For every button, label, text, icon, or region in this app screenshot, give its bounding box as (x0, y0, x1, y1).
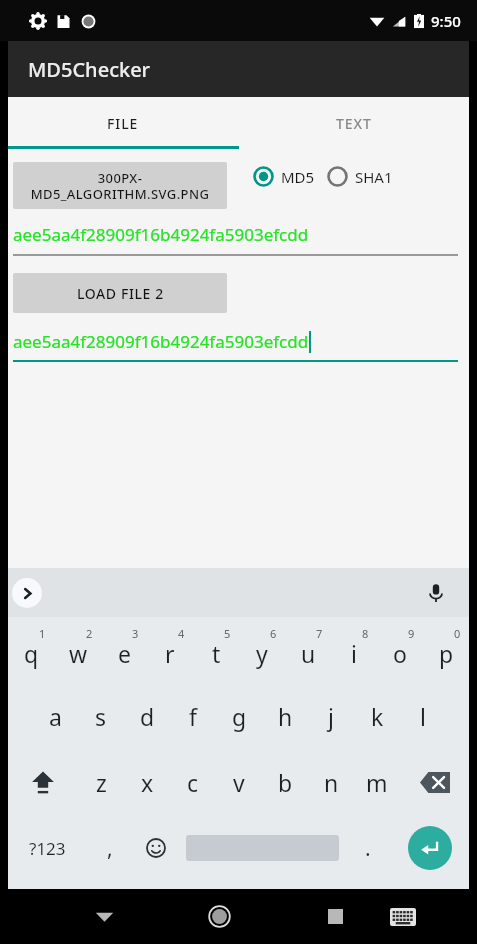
button[interactable]: x (124, 749, 170, 815)
button[interactable]: Voice input (421, 578, 451, 608)
button[interactable]: j (308, 683, 354, 749)
button[interactable]: g (216, 683, 262, 749)
button[interactable]: Home (189, 889, 250, 944)
button[interactable]: p (423, 617, 469, 683)
button[interactable]: Enter (391, 815, 469, 881)
button[interactable]: q (8, 617, 55, 683)
staticText: f (189, 701, 197, 732)
staticText: h (278, 701, 293, 732)
staticText: y (256, 638, 268, 669)
button[interactable]: MD5 (253, 166, 315, 187)
staticText: 6 (270, 626, 277, 641)
staticText: MD5 (281, 167, 315, 187)
button[interactable]: FILE (8, 97, 238, 149)
button[interactable]: Switch keyboard (372, 889, 433, 944)
button[interactable]: SHA1 (327, 166, 393, 187)
staticText: p (439, 638, 454, 669)
button[interactable]: Shift (8, 749, 78, 815)
staticText: , (107, 834, 113, 863)
staticText: r (165, 638, 175, 669)
staticText: 5 (224, 626, 231, 641)
staticText: 4 (178, 626, 185, 641)
button[interactable]: k (354, 683, 400, 749)
staticText: w (69, 638, 88, 669)
button[interactable]: e (101, 617, 147, 683)
button[interactable]: , (87, 815, 133, 881)
button[interactable]: r (147, 617, 193, 683)
button[interactable]: LOAD FILE 2 (13, 273, 227, 313)
staticText: 3 (132, 626, 139, 641)
button[interactable]: y (239, 617, 285, 683)
staticText: b (278, 767, 293, 798)
staticText: SHA1 (355, 167, 393, 187)
staticText: MD5Checker (28, 56, 151, 83)
staticText: g (232, 701, 247, 732)
staticText: k (371, 701, 384, 732)
button[interactable]: Backspace (400, 749, 469, 815)
button[interactable]: . (345, 815, 391, 881)
button[interactable]: Space (179, 815, 345, 881)
staticText: v (233, 767, 245, 798)
staticText: c (187, 767, 199, 798)
button[interactable]: h (262, 683, 308, 749)
staticText: x (141, 767, 154, 798)
button[interactable]: TEXT (238, 97, 469, 149)
staticText: 0 (454, 626, 461, 641)
staticText: t (212, 638, 221, 669)
button[interactable]: o (377, 617, 423, 683)
button[interactable]: Back (74, 889, 134, 944)
staticText: 7 (316, 626, 323, 641)
button[interactable]: Expand toolbar (12, 578, 42, 608)
staticText: aee5aa4f28909f16b4924fa5903efcdd (13, 330, 309, 353)
button[interactable]: s (78, 683, 124, 749)
staticText: z (96, 767, 107, 798)
button[interactable]: Recents (305, 889, 366, 944)
staticText: FILE (107, 114, 139, 133)
staticText: 1 (39, 626, 46, 641)
button[interactable]: 300PX-MD5_ALGORITHM.SVG.PNG (13, 162, 227, 209)
button[interactable]: n (308, 749, 354, 815)
staticText: a (49, 701, 62, 732)
button[interactable]: d (124, 683, 170, 749)
button[interactable]: l (400, 683, 446, 749)
staticText: n (324, 767, 339, 798)
staticText: d (140, 701, 155, 732)
button[interactable]: Emoji (133, 815, 179, 881)
button[interactable]: a (32, 683, 78, 749)
button[interactable]: i (331, 617, 377, 683)
staticText: e (118, 638, 131, 669)
staticText: s (95, 701, 107, 732)
staticText: LOAD FILE 2 (77, 284, 164, 303)
staticText: 300PX-MD5_ALGORITHM.SVG.PNG (13, 169, 227, 202)
button[interactable]: v (216, 749, 262, 815)
button[interactable]: t (193, 617, 239, 683)
staticText: 8 (362, 626, 369, 641)
button[interactable]: ?123 (8, 815, 87, 881)
button[interactable]: m (354, 749, 400, 815)
staticText: j (328, 701, 334, 732)
button[interactable]: z (78, 749, 124, 815)
button[interactable]: b (262, 749, 308, 815)
staticText: u (301, 638, 316, 669)
staticText: i (351, 638, 357, 669)
staticText: o (393, 638, 407, 669)
staticText: aee5aa4f28909f16b4924fa5903efcdd (13, 223, 309, 246)
staticText: 2 (86, 626, 93, 641)
button[interactable]: u (285, 617, 331, 683)
staticText: m (366, 767, 388, 798)
staticText: 9 (408, 626, 415, 641)
staticText: . (365, 834, 371, 863)
button[interactable]: c (170, 749, 216, 815)
staticText: l (420, 701, 426, 732)
staticText: q (24, 638, 39, 669)
button[interactable]: f (170, 683, 216, 749)
button[interactable]: w (55, 617, 101, 683)
staticText: 9:50 (431, 11, 461, 31)
staticText: TEXT (336, 114, 372, 133)
staticText: ?123 (29, 837, 66, 860)
